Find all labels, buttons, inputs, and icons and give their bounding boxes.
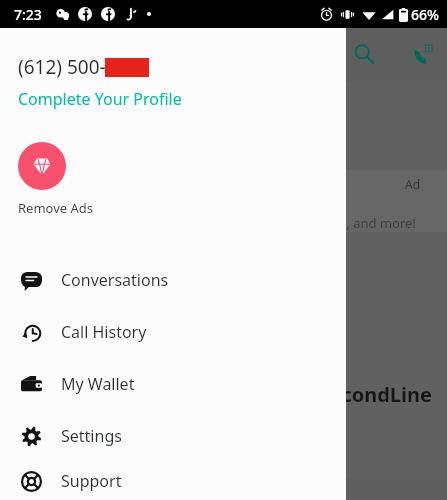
- staticText: Conversations: [61, 269, 169, 291]
- button[interactable]: Search: [340, 30, 388, 78]
- button[interactable]: Call History: [0, 306, 346, 358]
- staticText: 66%: [411, 5, 439, 24]
- staticText: Remove Ads: [18, 199, 94, 217]
- staticText: Stay connected, save on calls, and more!: [170, 214, 416, 232]
- button[interactable]: Settings: [0, 410, 346, 462]
- staticText: 7:23: [14, 5, 42, 24]
- button[interactable]: Complete Your Profile: [18, 88, 182, 110]
- button[interactable]: Dialpad: [400, 30, 447, 78]
- staticText: Settings: [61, 425, 122, 447]
- button[interactable]: Remove Ads: [18, 142, 104, 221]
- staticText: Complete Your Profile: [18, 88, 182, 110]
- button[interactable]: Support: [0, 462, 346, 500]
- staticText: Call History: [61, 321, 147, 343]
- staticText: Ad: [405, 176, 421, 192]
- staticText: (612) 500-: [18, 54, 106, 80]
- staticText: My Wallet: [61, 373, 135, 395]
- button[interactable]: My Wallet: [0, 358, 346, 410]
- staticText: TextNow · SecondLine: [215, 381, 432, 408]
- button[interactable]: Conversations: [0, 254, 346, 306]
- staticText: Support: [61, 470, 122, 492]
